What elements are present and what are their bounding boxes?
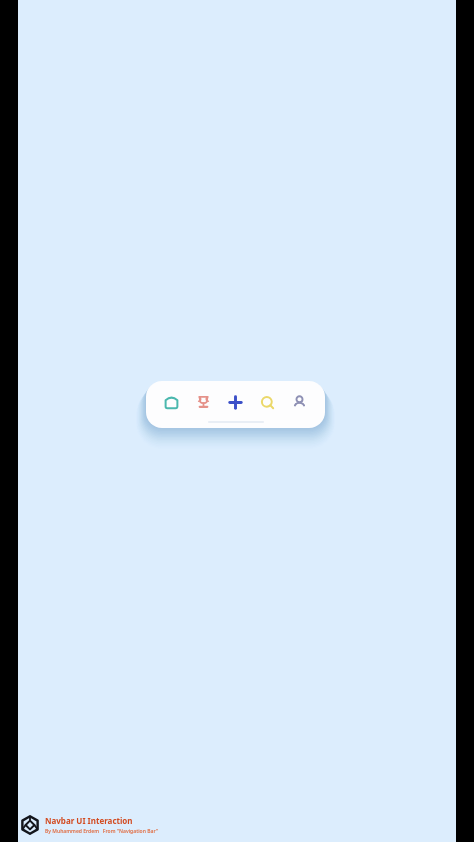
staticText: Navbar UI Interaction <box>45 815 133 826</box>
button[interactable]: Logo <box>18 812 159 838</box>
button[interactable]: Profile <box>290 393 309 412</box>
other: Logo <box>20 815 40 835</box>
button[interactable]: Add <box>226 393 245 412</box>
button[interactable]: Search <box>258 393 277 412</box>
button[interactable]: Home <box>162 393 181 412</box>
staticText: By Muhammed Erdem From "Navigation Bar" <box>45 828 159 835</box>
button[interactable]: Trophy <box>194 393 213 412</box>
